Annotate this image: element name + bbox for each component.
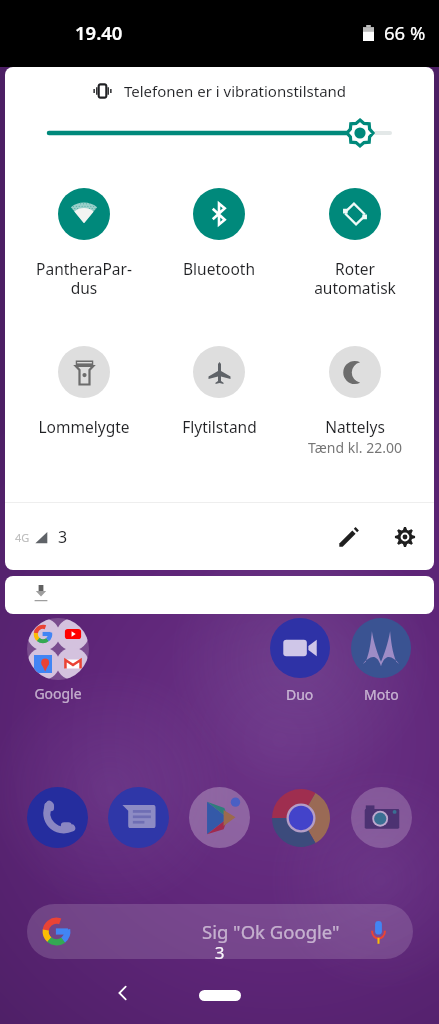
staticText: 19.40 (75, 20, 123, 45)
staticText: 4G (15, 530, 30, 545)
staticText: Tænd kl. 22.00 (308, 438, 402, 457)
button[interactable]: Moto (351, 618, 411, 704)
button[interactable]: Home (199, 990, 241, 1001)
button[interactable]: Duo (270, 618, 330, 704)
button[interactable] (27, 618, 89, 680)
staticText: Lommelygte (38, 416, 130, 437)
button[interactable] (27, 787, 88, 848)
button[interactable] (5, 576, 434, 614)
button[interactable]: Bluetooth (152, 188, 286, 279)
button[interactable]: Back (100, 970, 146, 1016)
button[interactable]: Roter automatisk (288, 188, 422, 298)
staticText: Bluetooth (183, 258, 255, 279)
button[interactable] (351, 787, 412, 848)
button[interactable]: PantheraPar- dus (17, 188, 151, 298)
button[interactable] (189, 787, 250, 848)
staticText: PantheraPar- dus (36, 258, 132, 298)
staticText: Duo (286, 685, 314, 704)
staticText: 66 % (384, 20, 426, 45)
staticText: Roter automatisk (314, 258, 396, 298)
staticText: Nattelys (325, 416, 385, 437)
button[interactable] (108, 787, 169, 848)
button[interactable]: Edit (327, 515, 371, 559)
button[interactable] (270, 787, 331, 848)
button[interactable]: Sig "Ok Google" (27, 904, 413, 959)
staticText: 3 (0, 941, 439, 964)
staticText: 3 (58, 526, 68, 548)
staticText: Sig "Ok Google" (202, 919, 340, 944)
button[interactable]: Settings (383, 515, 427, 559)
staticText: Google (20, 684, 96, 703)
button[interactable]: Lommelygte (17, 346, 151, 437)
button[interactable]: Flytilstand (152, 346, 286, 437)
button[interactable]: Nattelys (288, 346, 422, 457)
staticText: Moto (364, 685, 399, 704)
staticText: Telefonen er i vibrationstilstand (124, 81, 347, 101)
staticText: Flytilstand (182, 416, 257, 437)
